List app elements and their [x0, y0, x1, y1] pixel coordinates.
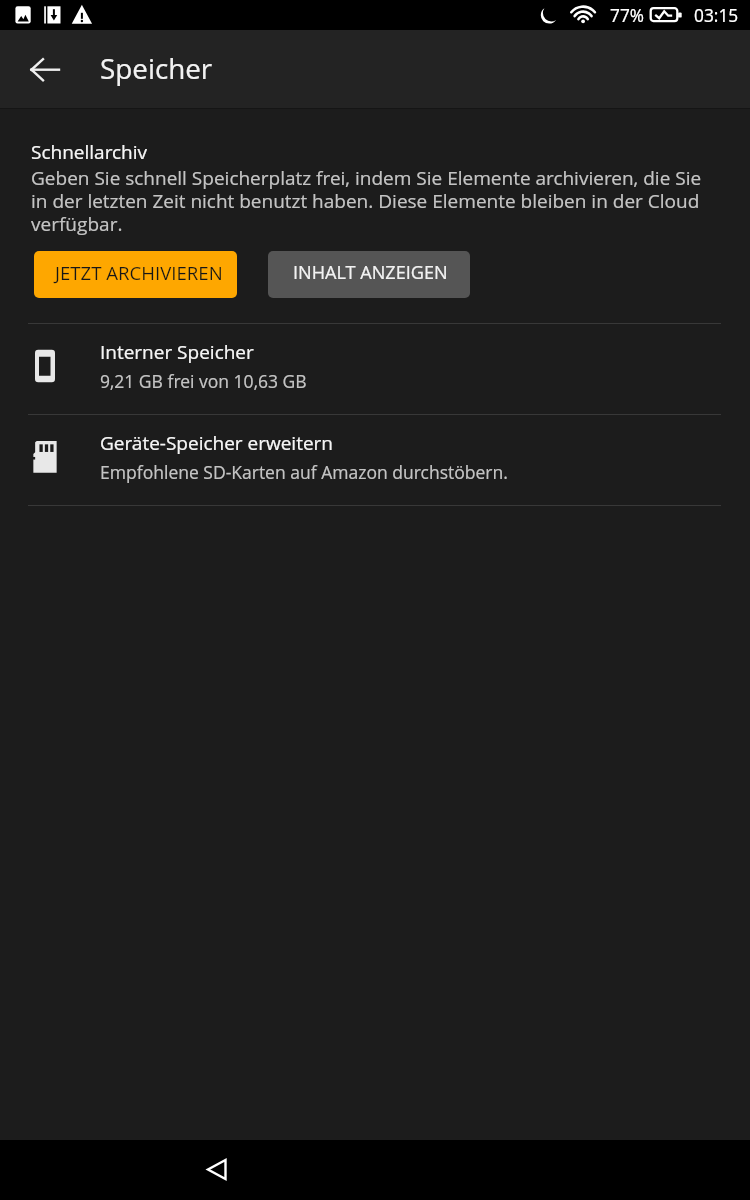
staticText: Schnellarchiv: [31, 139, 148, 165]
button[interactable]: JETZT ARCHIVIEREN: [34, 251, 237, 298]
button[interactable]: Geräte-Speicher erweitern: [0, 415, 750, 505]
staticText: 77%: [610, 4, 645, 28]
staticText: 03:15: [694, 4, 739, 28]
staticText: JETZT ARCHIVIEREN: [55, 260, 223, 285]
staticText: Geben Sie schnell Speicherplatz frei, in…: [31, 165, 712, 237]
staticText: Interner Speicher: [100, 339, 254, 365]
staticText: Speicher: [100, 49, 213, 87]
button[interactable]: Back: [17, 42, 73, 98]
staticText: 9,21 GB frei von 10,63 GB: [100, 369, 307, 393]
button[interactable]: Interner Speicher: [0, 324, 750, 414]
staticText: INHALT ANZEIGEN: [293, 260, 448, 285]
button[interactable]: INHALT ANZEIGEN: [268, 251, 470, 298]
staticText: Empfohlene SD-Karten auf Amazon durchstö…: [100, 460, 508, 484]
staticText: Geräte-Speicher erweitern: [100, 430, 333, 456]
button[interactable]: Back: [187, 1140, 247, 1200]
